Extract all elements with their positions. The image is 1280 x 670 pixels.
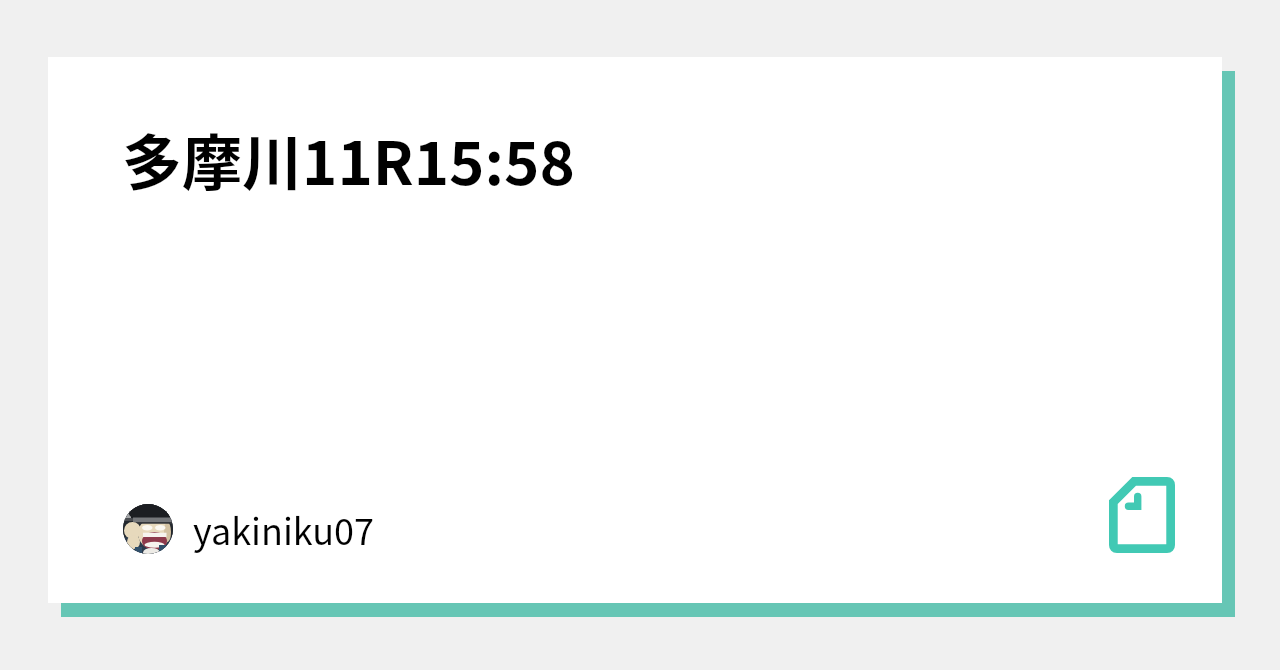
button[interactable]: yakiniku07 profile picture: [123, 503, 375, 555]
button[interactable]: note: [1109, 477, 1175, 553]
other: yakiniku07 profile picture: [123, 504, 173, 554]
staticText: 多摩川11R15:58: [122, 115, 575, 202]
staticText: yakiniku07: [193, 503, 375, 555]
